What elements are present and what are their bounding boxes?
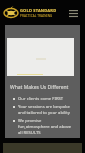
staticText: PRACTICAL TRAINING xyxy=(20,14,53,18)
staticText: GOLD STANDARD xyxy=(20,8,57,13)
button[interactable]: Gold Standard Practical Training home xyxy=(3,5,57,21)
staticText: What Makes Us Different xyxy=(10,84,69,91)
staticText: Your sessions are bespoke and tailored t… xyxy=(18,104,74,116)
staticText: Our clients come FIRST xyxy=(18,96,64,102)
button[interactable]: Open navigation menu xyxy=(67,7,79,19)
staticText: We promise fun,atmosphere and above all … xyxy=(18,118,74,136)
